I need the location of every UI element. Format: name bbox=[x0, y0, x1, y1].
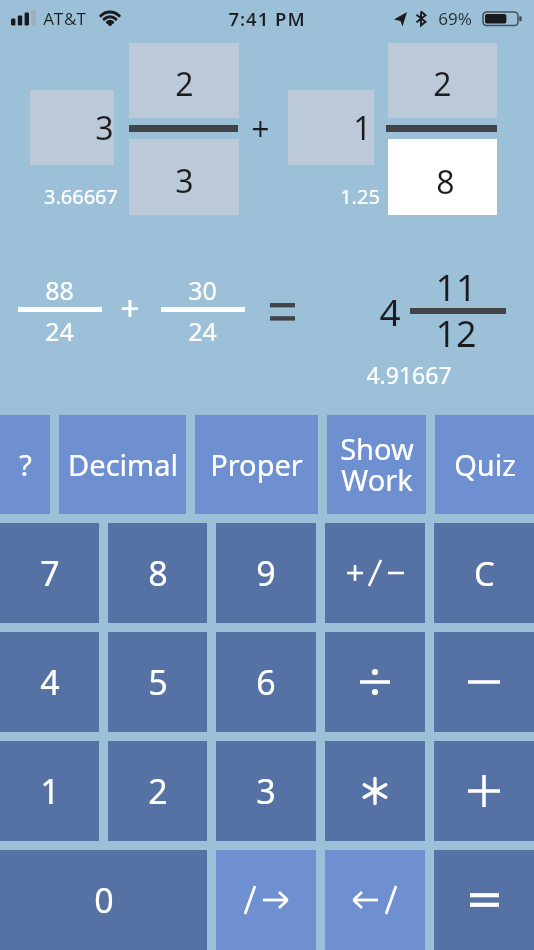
staticText: 2 bbox=[175, 62, 194, 106]
staticText: 12 bbox=[435, 309, 477, 355]
staticText: 4 bbox=[379, 286, 401, 336]
button[interactable]: 2 bbox=[129, 43, 239, 118]
button[interactable]: 0 bbox=[0, 850, 207, 950]
button[interactable]: 3 bbox=[216, 741, 316, 841]
staticText: 3 bbox=[175, 159, 194, 203]
button[interactable]: 9 bbox=[216, 523, 316, 623]
staticText: Quiz bbox=[454, 445, 516, 484]
staticText: 30 bbox=[188, 273, 217, 307]
button[interactable]: 1 bbox=[288, 90, 374, 165]
button[interactable] bbox=[325, 523, 425, 623]
button[interactable]: C bbox=[434, 523, 534, 623]
button[interactable] bbox=[434, 741, 534, 841]
staticText: 3.66667 bbox=[44, 183, 118, 210]
button[interactable]: Show Work bbox=[327, 415, 426, 514]
staticText: 3 bbox=[256, 768, 276, 814]
button[interactable]: 5 bbox=[108, 632, 207, 732]
staticText: 3 bbox=[95, 106, 114, 150]
button[interactable] bbox=[325, 741, 425, 841]
button[interactable]: 6 bbox=[216, 632, 316, 732]
staticText: Proper bbox=[210, 445, 303, 484]
staticText: 8 bbox=[148, 550, 168, 596]
staticText: 88 bbox=[45, 273, 74, 307]
button[interactable] bbox=[434, 632, 534, 732]
staticText: 2 bbox=[433, 62, 452, 106]
staticText: 7 bbox=[40, 550, 60, 596]
button[interactable]: 4 bbox=[0, 632, 99, 732]
staticText: Decimal bbox=[68, 445, 178, 484]
staticText: 24 bbox=[188, 314, 217, 348]
button[interactable]: 7 bbox=[0, 523, 99, 623]
staticText: 0 bbox=[94, 877, 114, 923]
button[interactable] bbox=[216, 850, 316, 950]
button[interactable]: Quiz bbox=[435, 415, 534, 514]
button[interactable]: 3 bbox=[30, 90, 114, 165]
button[interactable] bbox=[325, 632, 425, 732]
staticText: 7:41 PM bbox=[228, 6, 306, 31]
staticText: + bbox=[251, 107, 270, 147]
button[interactable]: 2 bbox=[108, 741, 207, 841]
staticText: 24 bbox=[45, 314, 74, 348]
button[interactable]: Proper bbox=[195, 415, 318, 514]
button[interactable]: Decimal bbox=[59, 415, 186, 514]
button[interactable] bbox=[325, 850, 425, 950]
staticText: C bbox=[474, 551, 495, 596]
button[interactable]: 2 bbox=[388, 43, 497, 118]
staticText: 1 bbox=[40, 768, 60, 814]
staticText: 9 bbox=[256, 550, 276, 596]
staticText: Show Work bbox=[340, 429, 414, 500]
staticText: 2 bbox=[148, 768, 168, 814]
staticText: 5 bbox=[148, 659, 168, 705]
staticText: 8 bbox=[436, 160, 455, 204]
button[interactable]: 8 bbox=[108, 523, 207, 623]
staticText: 69% bbox=[438, 7, 472, 30]
staticText: 1.25 bbox=[340, 183, 380, 210]
staticText: 4 bbox=[40, 659, 60, 705]
button[interactable]: 3 bbox=[129, 139, 239, 215]
staticText: 6 bbox=[256, 659, 276, 705]
staticText: 11 bbox=[435, 263, 477, 309]
staticText: ? bbox=[19, 445, 32, 484]
staticText: AT&T bbox=[43, 7, 87, 30]
button[interactable]: 1 bbox=[0, 741, 99, 841]
button[interactable]: 8 bbox=[388, 139, 497, 215]
staticText: 4.91667 bbox=[366, 359, 452, 390]
button[interactable] bbox=[434, 850, 534, 950]
staticText: 1 bbox=[353, 106, 372, 150]
button[interactable]: ? bbox=[0, 415, 50, 514]
staticText: + bbox=[120, 285, 140, 331]
